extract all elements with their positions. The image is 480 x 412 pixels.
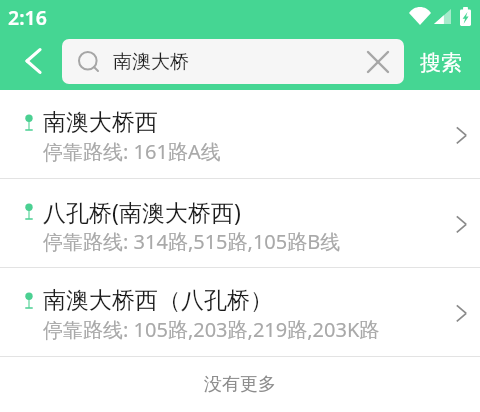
staticText: 搜索 [420,50,462,76]
staticText: 南澳大桥西 [43,108,158,137]
staticText: 停靠路线: 105路,203路,219路,203K路 [43,316,380,343]
button[interactable]: Clear search [358,42,398,82]
staticText: 2:16 [8,4,47,31]
button[interactable]: Back [0,32,62,90]
button[interactable]: 南澳大桥 [62,39,404,84]
button[interactable]: 南澳大桥西 [0,90,480,178]
button[interactable]: 搜索 [412,32,470,90]
staticText: 八孔桥(南澳大桥西) [43,196,241,227]
staticText: 停靠路线: 161路A线 [43,138,221,165]
staticText: 停靠路线: 314路,515路,105路B线 [43,228,341,255]
staticText: 没有更多 [204,373,276,396]
staticText: 南澳大桥 [113,50,189,74]
staticText: 南澳大桥西（八孔桥） [43,286,273,315]
button[interactable]: 八孔桥(南澳大桥西) [0,179,480,267]
button[interactable]: 南澳大桥西（八孔桥） [0,268,480,356]
